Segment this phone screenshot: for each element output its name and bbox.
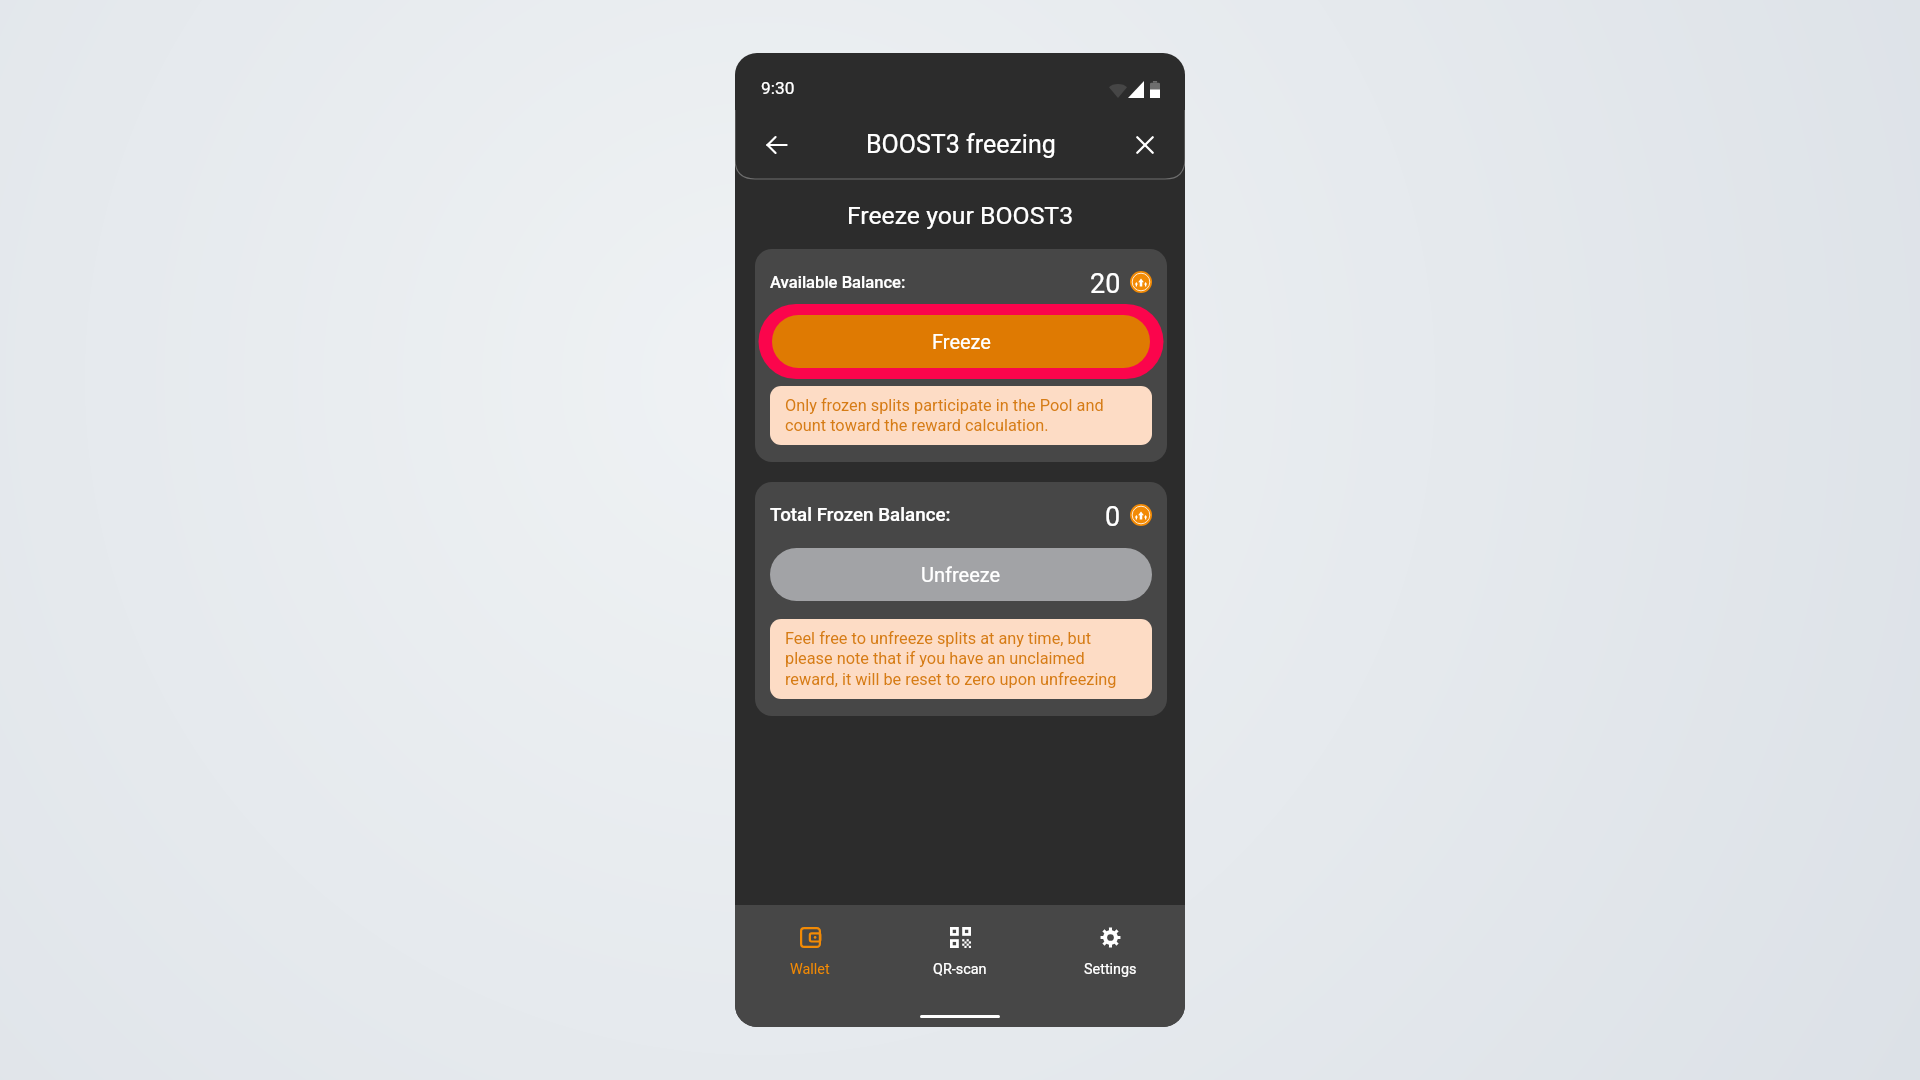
button[interactable]: Settings: [1035, 905, 1185, 1000]
staticText: Unfreeze: [921, 563, 1001, 586]
button[interactable]: QR-scan: [885, 905, 1035, 1000]
staticText: Freeze: [932, 330, 991, 353]
staticText: Only frozen splits participate in the Po…: [785, 396, 1137, 435]
staticText: BOOST3 freezing: [866, 130, 1056, 159]
staticText: 20: [1090, 268, 1121, 296]
button[interactable]: Unfreeze: [770, 548, 1152, 601]
staticText: 0: [1105, 501, 1121, 529]
staticText: Total Frozen Balance:: [770, 504, 951, 526]
staticText: QR-scan: [933, 961, 987, 978]
staticText: Settings: [1084, 961, 1137, 978]
staticText: 9:30: [761, 78, 795, 98]
button[interactable]: Close: [1123, 123, 1167, 167]
button[interactable]: Wallet: [735, 905, 885, 1000]
staticText: Feel free to unfreeze splits at any time…: [785, 629, 1137, 689]
staticText: Freeze your BOOST3: [735, 201, 1185, 230]
button[interactable]: Freeze: [772, 315, 1150, 368]
staticText: Wallet: [790, 961, 830, 978]
staticText: Available Balance:: [770, 273, 906, 292]
button[interactable]: Back: [755, 123, 799, 167]
